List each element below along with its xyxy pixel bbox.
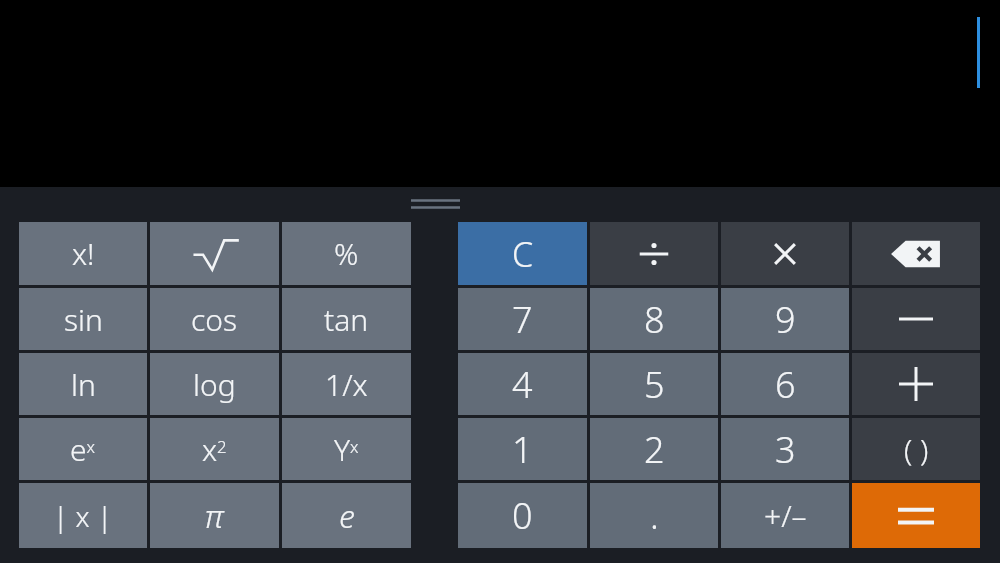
- button[interactable]: 6: [721, 353, 849, 415]
- button[interactable]: 1: [458, 418, 587, 480]
- button[interactable]: Multiply: [721, 222, 849, 285]
- staticText: .: [650, 491, 659, 540]
- button[interactable]: +/–: [721, 483, 849, 548]
- staticText: x2: [202, 429, 227, 470]
- button[interactable]: 2: [590, 418, 718, 480]
- button[interactable]: .: [590, 483, 718, 548]
- staticText: 1: [512, 425, 533, 474]
- staticText: 5: [644, 360, 665, 409]
- button[interactable]: 5: [590, 353, 718, 415]
- button[interactable]: e: [282, 483, 411, 548]
- staticText: tan: [324, 299, 369, 340]
- button[interactable]: | x |: [19, 483, 147, 548]
- button[interactable]: x2: [150, 418, 279, 480]
- button[interactable]: Equals: [852, 483, 980, 548]
- button[interactable]: 8: [590, 288, 718, 350]
- button[interactable]: Plus: [852, 353, 980, 415]
- button[interactable]: cos: [150, 288, 279, 350]
- button[interactable]: 0: [458, 483, 587, 548]
- staticText: x!: [72, 233, 95, 274]
- button[interactable]: %: [282, 222, 411, 285]
- staticText: ln: [71, 364, 96, 405]
- staticText: C: [512, 231, 534, 277]
- button[interactable]: tan: [282, 288, 411, 350]
- staticText: sin: [64, 299, 103, 340]
- button[interactable]: 1/x: [282, 353, 411, 415]
- button[interactable]: Minus: [852, 288, 980, 350]
- staticText: ex: [70, 429, 96, 470]
- button[interactable]: Square root: [150, 222, 279, 285]
- staticText: 9: [775, 295, 796, 344]
- staticText: cos: [191, 299, 238, 340]
- button[interactable]: π: [150, 483, 279, 548]
- staticText: | x |: [53, 497, 113, 535]
- staticText: log: [193, 364, 236, 405]
- button[interactable]: 3: [721, 418, 849, 480]
- button[interactable]: ( ): [852, 418, 980, 480]
- button[interactable]: Divide: [590, 222, 718, 285]
- staticText: %: [334, 233, 359, 274]
- button[interactable]: ex: [19, 418, 147, 480]
- staticText: π: [205, 494, 224, 538]
- button[interactable]: 4: [458, 353, 587, 415]
- button[interactable]: x!: [19, 222, 147, 285]
- staticText: 6: [775, 360, 796, 409]
- staticText: 1/x: [325, 364, 368, 405]
- button[interactable]: Backspace: [852, 222, 980, 285]
- staticText: Yx: [334, 429, 359, 470]
- button[interactable]: log: [150, 353, 279, 415]
- staticText: 3: [775, 425, 796, 474]
- staticText: +/–: [764, 495, 807, 536]
- staticText: 2: [644, 425, 665, 474]
- staticText: 8: [644, 295, 665, 344]
- staticText: 4: [512, 360, 533, 409]
- button[interactable]: C: [458, 222, 587, 285]
- button[interactable]: Yx: [282, 418, 411, 480]
- staticText: ( ): [904, 429, 929, 470]
- button[interactable]: ln: [19, 353, 147, 415]
- staticText: 0: [512, 491, 533, 540]
- staticText: e: [339, 494, 355, 538]
- button[interactable]: 9: [721, 288, 849, 350]
- button[interactable]: sin: [19, 288, 147, 350]
- staticText: 7: [512, 295, 533, 344]
- button[interactable]: 7: [458, 288, 587, 350]
